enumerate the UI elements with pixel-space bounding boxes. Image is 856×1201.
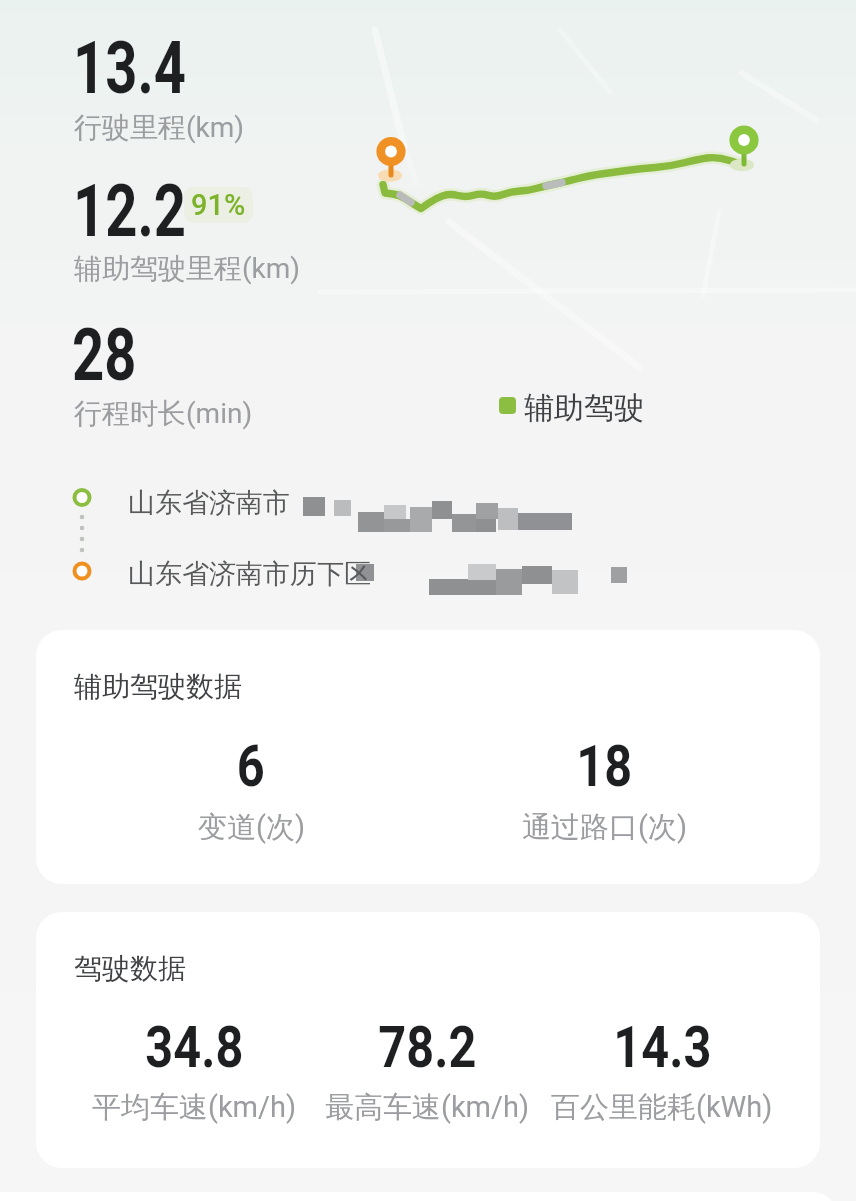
- staticText: 通过路口(次): [522, 809, 688, 846]
- staticText: 百公里能耗(kWh): [551, 1089, 773, 1126]
- staticText: 13.4: [73, 26, 186, 110]
- staticText: 行驶里程(km): [74, 110, 245, 145]
- staticText: 平均车速(km/h): [92, 1089, 297, 1126]
- staticText: 辅助驾驶数据: [74, 669, 242, 704]
- staticText: 辅助驾驶里程(km): [74, 251, 301, 286]
- staticText: 14.3: [613, 1013, 712, 1081]
- staticText: 行程时长(min): [74, 396, 253, 431]
- staticText: 山东省济南市历下区: [128, 557, 371, 591]
- staticText: 28: [72, 313, 137, 397]
- staticText: 34.8: [145, 1013, 244, 1081]
- button[interactable]: 驾驶数据: [36, 912, 820, 1168]
- staticText: 最高车速(km/h): [325, 1089, 530, 1126]
- staticText: 78.2: [378, 1013, 477, 1081]
- staticText: 12.2: [73, 169, 186, 253]
- staticText: 变道(次): [198, 809, 306, 846]
- staticText: 6: [237, 732, 265, 800]
- staticText: 18: [576, 732, 633, 800]
- staticText: 山东省济南市: [128, 486, 290, 520]
- staticText: 驾驶数据: [74, 951, 186, 986]
- button[interactable]: 辅助驾驶数据: [36, 630, 820, 884]
- staticText: 91%: [191, 188, 246, 222]
- staticText: 辅助驾驶: [524, 389, 644, 427]
